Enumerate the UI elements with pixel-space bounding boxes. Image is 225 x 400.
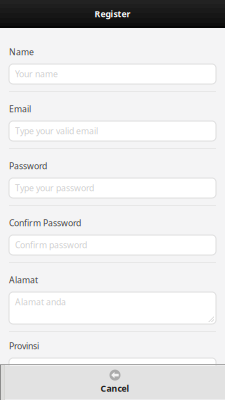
staticText: Type your valid email <box>15 125 98 137</box>
staticText: Confirm Password <box>9 217 81 229</box>
staticText: Confirm password <box>15 239 87 251</box>
staticText: Email <box>9 103 31 115</box>
staticText: Provinsi <box>9 340 39 352</box>
button[interactable]: Alamat anda <box>9 292 216 324</box>
button[interactable]: Type your valid email <box>9 121 216 141</box>
staticText: Type your password <box>15 182 94 194</box>
button[interactable] <box>9 358 216 378</box>
button[interactable]: Type your password <box>9 178 216 198</box>
staticText: Name <box>9 46 34 58</box>
staticText: Alamat <box>9 274 38 286</box>
button[interactable]: Confirm password <box>9 235 216 255</box>
staticText: Cancel <box>100 383 129 394</box>
button[interactable]: Cancel <box>0 364 225 400</box>
staticText: Your name <box>15 68 58 80</box>
button[interactable]: Your name <box>9 64 216 84</box>
staticText: Password <box>9 160 47 172</box>
staticText: Alamat anda <box>15 296 66 308</box>
staticText: Register <box>94 8 130 20</box>
